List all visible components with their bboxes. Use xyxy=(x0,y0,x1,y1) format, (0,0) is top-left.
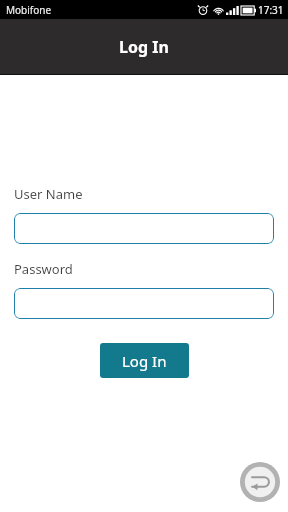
staticText: User Name xyxy=(14,185,83,203)
button[interactable] xyxy=(14,213,274,244)
staticText: Log In xyxy=(122,351,167,371)
button[interactable] xyxy=(14,288,274,319)
staticText: Log In xyxy=(119,36,169,58)
staticText: 17:31 xyxy=(258,3,284,17)
button[interactable]: Back xyxy=(240,462,280,502)
staticText: Mobifone xyxy=(6,3,52,17)
staticText: Password xyxy=(14,260,73,278)
button[interactable]: Log In xyxy=(100,343,189,378)
